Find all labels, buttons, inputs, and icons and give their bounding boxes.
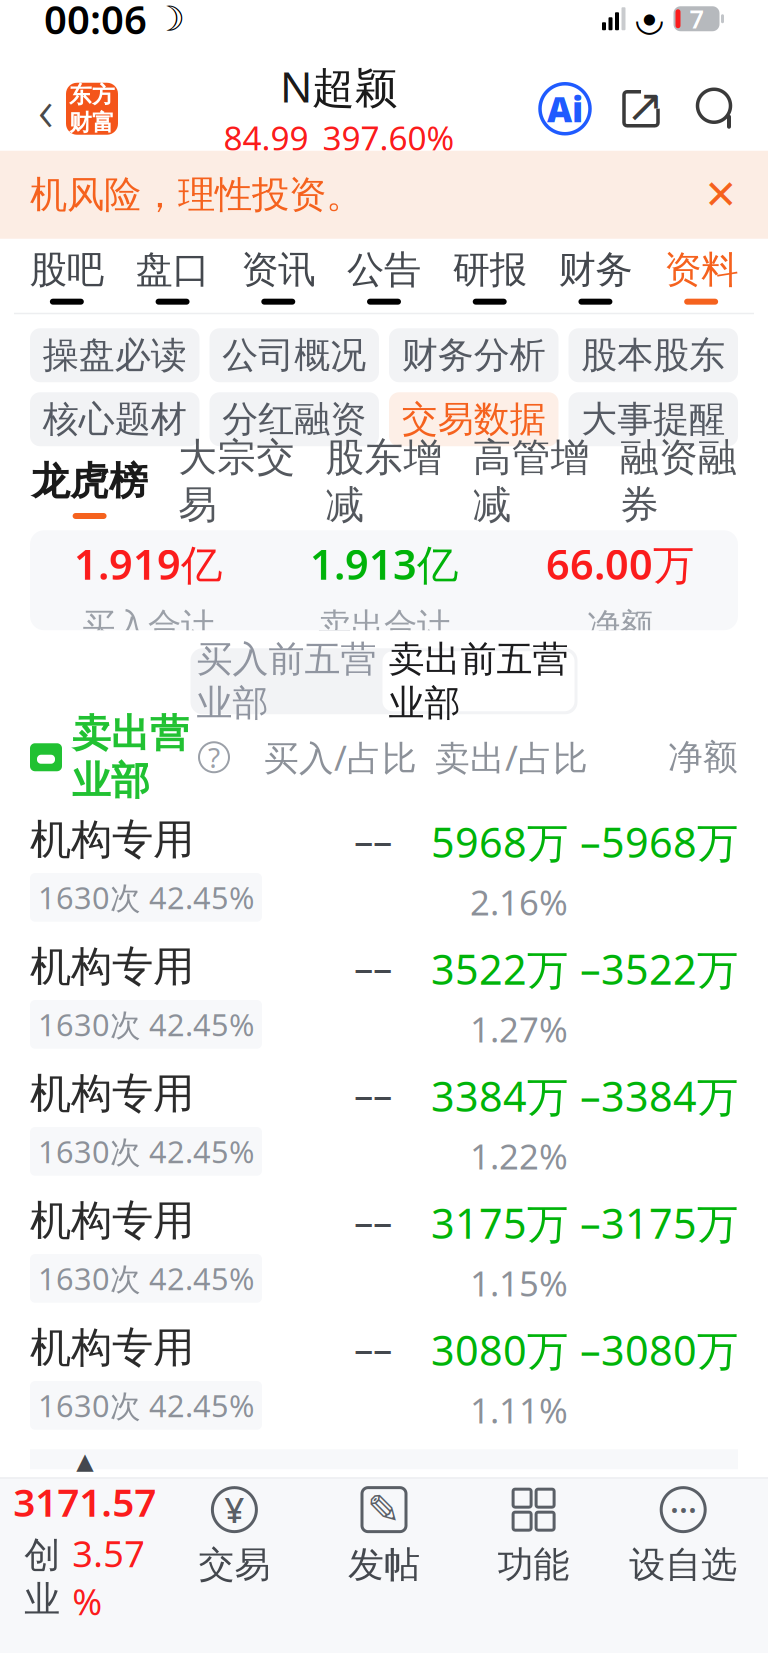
staticText: 3.57% [72, 1529, 145, 1625]
staticText: –3384万 [580, 1068, 738, 1123]
staticText: 财务分析 [402, 333, 546, 377]
staticText: 融资融券 [620, 434, 737, 529]
button[interactable]: 东方财富 [66, 83, 118, 135]
staticText: 财富 [69, 109, 115, 137]
staticText: Ai [547, 86, 583, 132]
button[interactable]: 盘口 [120, 239, 225, 313]
staticText: 机构专用 [30, 1195, 194, 1246]
button[interactable]: 搜索 [692, 84, 742, 134]
button[interactable]: 机构专用 [0, 927, 768, 1054]
button[interactable]: 公司概况 [209, 328, 379, 382]
button[interactable]: 机构专用 [0, 800, 768, 927]
staticText: 公司概况 [222, 333, 366, 377]
button[interactable]: ¥ [160, 1479, 309, 1595]
staticText: 盘口 [136, 247, 210, 293]
staticText: 股本股东 [581, 333, 725, 377]
staticText: 1630次 42.45% [38, 877, 254, 918]
staticText: 股吧 [30, 247, 104, 293]
staticText: 机构专用 [30, 1322, 194, 1373]
button[interactable]: 大事提醒 [568, 392, 738, 446]
staticText: 5968万 [431, 814, 568, 869]
staticText: 股东增减 [325, 434, 442, 529]
button[interactable]: 研报 [437, 239, 543, 313]
staticText: 研报 [453, 247, 527, 293]
button[interactable]: 关闭提示 [694, 168, 748, 222]
staticText: 大事提醒 [581, 397, 725, 441]
button[interactable]: ··· [608, 1479, 758, 1595]
staticText: 397.60% [322, 116, 454, 160]
staticText: 3384万 [431, 1068, 568, 1123]
staticText: 买入合计 [82, 605, 214, 646]
staticText: 操盘必读 [43, 333, 187, 377]
staticText: –5968万 [580, 814, 738, 869]
staticText: 财务 [558, 247, 632, 293]
button[interactable]: 说明 [199, 742, 229, 772]
staticText: 机风险，理性投资。 [30, 172, 363, 218]
button[interactable]: 资料 [648, 239, 754, 313]
staticText: –3522万 [580, 941, 738, 996]
staticText: 资讯 [241, 247, 315, 293]
staticText: 买入前五营业部 [196, 637, 376, 725]
staticText: 2.16% [470, 879, 568, 925]
button[interactable]: 创业板指数 [10, 1479, 160, 1595]
staticText: 3080万 [431, 1322, 568, 1377]
button[interactable]: 核心题材 [30, 392, 199, 446]
staticText: 分红融资 [222, 397, 366, 441]
staticText: 公告 [347, 247, 421, 293]
staticText: 1.15% [470, 1260, 568, 1306]
button[interactable]: 返回 [26, 78, 66, 140]
button[interactable]: 机构专用 [0, 1181, 768, 1308]
staticText: ☽ [154, 0, 185, 38]
button[interactable]: 股东增减 [310, 446, 458, 530]
button[interactable]: 分红融资 [209, 392, 379, 446]
staticText: –3080万 [580, 1322, 738, 1377]
button[interactable]: 机构专用 [0, 1054, 768, 1181]
staticText: 1.919亿 [74, 536, 222, 591]
button[interactable]: 财务 [543, 239, 648, 313]
staticText: 核心题材 [43, 397, 187, 441]
staticText: 1.27% [470, 1006, 568, 1052]
button[interactable]: ✎ [309, 1479, 459, 1595]
button[interactable]: 股本股东 [568, 328, 738, 382]
button[interactable]: AI 助手 [540, 84, 590, 134]
staticText: –– [354, 1195, 392, 1246]
staticText: 00:06 [44, 0, 147, 45]
button[interactable]: 交易数据 [389, 392, 558, 446]
button[interactable]: 操盘必读 [30, 328, 199, 382]
button[interactable]: 股吧 [14, 239, 120, 313]
staticText: 1630次 42.45% [38, 1258, 254, 1299]
button[interactable]: 资讯 [225, 239, 331, 313]
staticText: 资料 [664, 247, 738, 293]
button[interactable]: 高管增减 [458, 446, 605, 530]
staticText: ✎ [367, 1487, 401, 1532]
staticText: ↗ [626, 80, 664, 131]
staticText: –3175万 [580, 1195, 738, 1250]
staticText: 卖出/占比 [435, 734, 588, 780]
button[interactable]: 卖出前五营业部 [382, 651, 574, 711]
staticText: ‹ [38, 70, 54, 148]
staticText: 净额 [668, 736, 738, 779]
button[interactable]: 公告 [331, 239, 437, 313]
button[interactable]: 分享 [616, 84, 666, 134]
staticText: 卖出前五营业部 [388, 637, 568, 725]
button[interactable]: 买入前五营业部 [190, 648, 382, 714]
button[interactable]: 大宗交易 [163, 446, 310, 530]
button[interactable]: 融资融券 [605, 446, 752, 530]
staticText: 发帖 [348, 1543, 420, 1587]
button[interactable]: 财务分析 [389, 328, 558, 382]
staticText: 1630次 42.45% [38, 1385, 254, 1426]
staticText: 功能 [498, 1543, 570, 1587]
button[interactable]: 机构专用 [0, 1308, 768, 1435]
button[interactable]: 功能 [459, 1479, 608, 1595]
staticText: 7 [689, 2, 703, 35]
staticText: –– [354, 941, 392, 992]
button[interactable]: 龙虎榜 [16, 446, 163, 530]
staticText: 交易数据 [402, 397, 546, 441]
staticText: N超颖 [280, 58, 398, 115]
staticText: 66.00万 [546, 536, 694, 591]
staticText: ··· [670, 1487, 697, 1533]
staticText: ¥ [224, 1487, 244, 1533]
staticText: ? [208, 739, 220, 776]
staticText: ◡ [636, 0, 663, 38]
staticText: 机构专用 [30, 814, 194, 865]
